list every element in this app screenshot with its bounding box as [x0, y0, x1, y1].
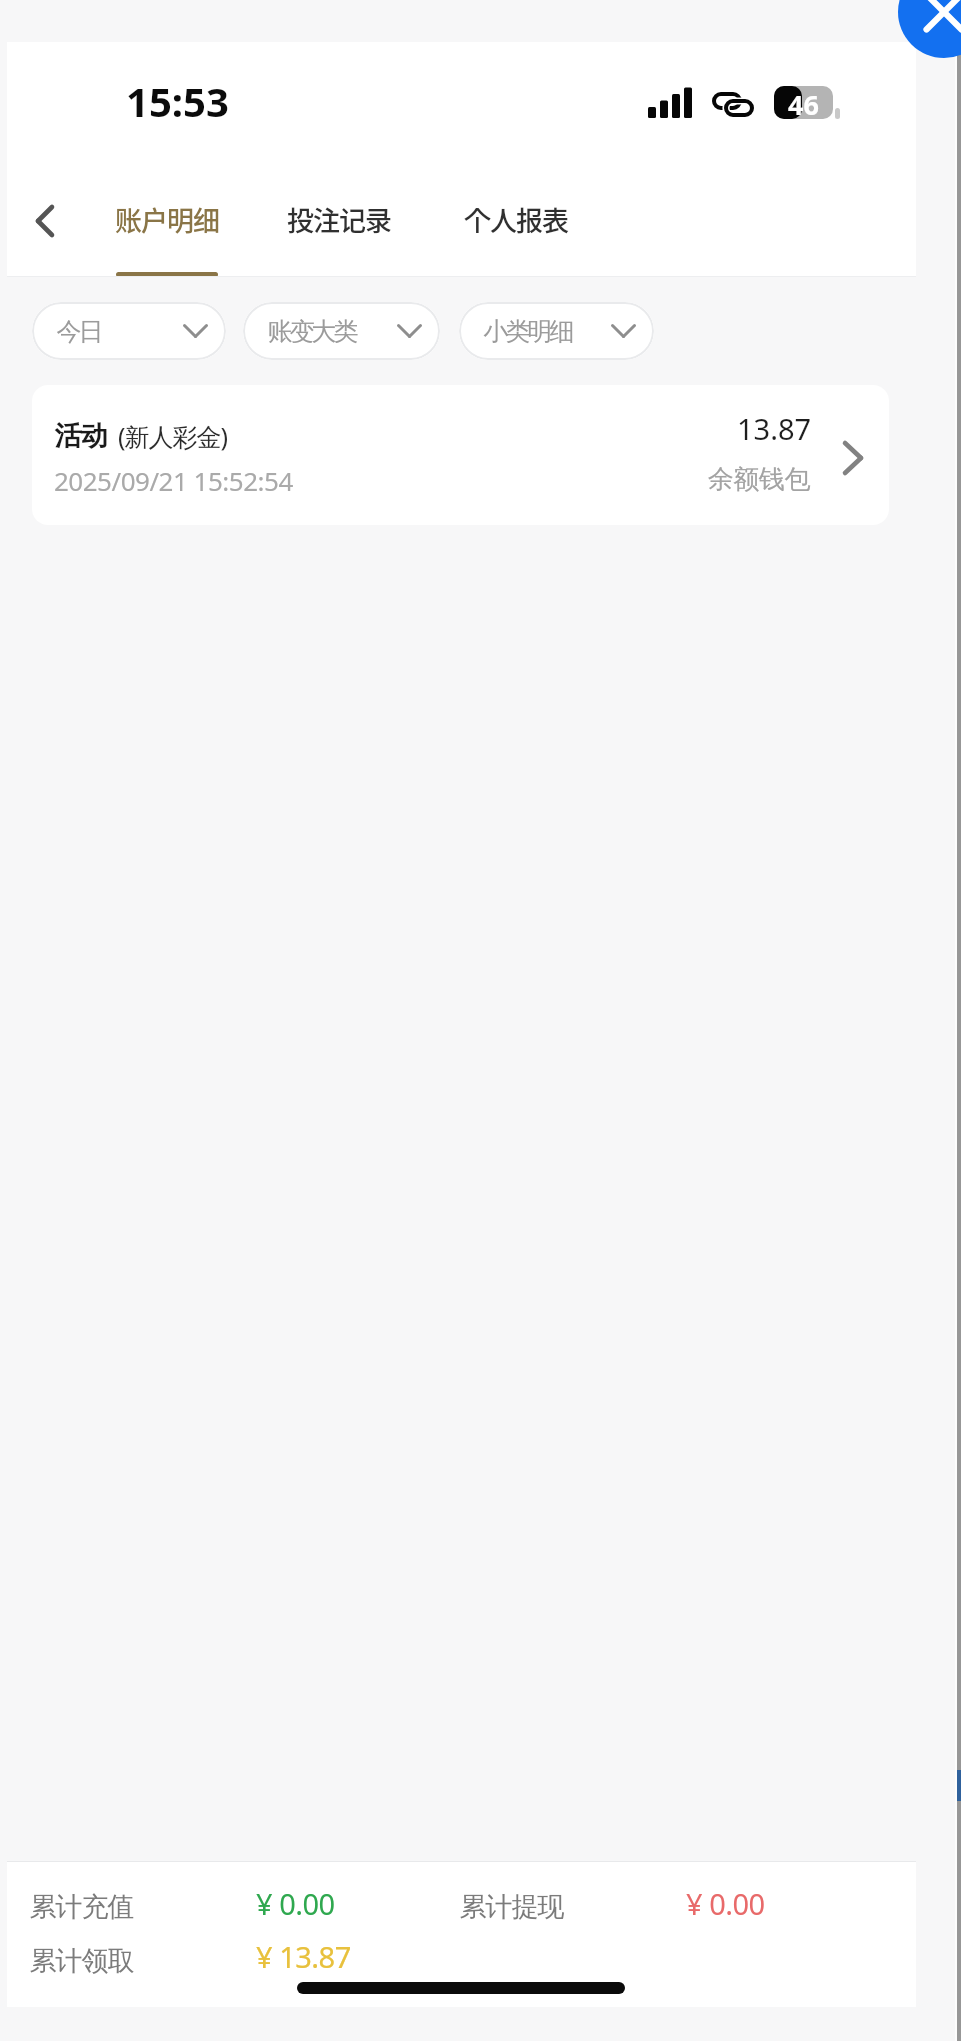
staticText: 账户明细 — [115, 200, 219, 239]
staticText: 累计领取 — [30, 1944, 134, 1978]
button[interactable]: Back — [14, 191, 76, 253]
button[interactable]: 投注记录 — [272, 178, 406, 277]
staticText: 累计充值 — [30, 1890, 134, 1924]
button[interactable]: 个人报表 — [449, 178, 583, 277]
staticText: 46 — [788, 86, 819, 119]
button[interactable]: 小类明细 — [459, 302, 654, 360]
staticText: ¥ 0.00 — [686, 1884, 765, 1923]
staticText: 13.87 — [737, 409, 812, 448]
staticText: ¥ 13.87 — [256, 1937, 351, 1976]
staticText: ¥ 0.00 — [256, 1884, 335, 1923]
staticText: (新人彩金) — [118, 419, 228, 453]
button[interactable]: 账户明细 — [100, 178, 234, 277]
staticText: 活动 — [55, 419, 107, 453]
staticText: 账变大类 — [269, 316, 357, 347]
button[interactable]: 今日 — [32, 302, 226, 360]
button[interactable]: 活动 — [32, 385, 889, 525]
staticText: 余额钱包 — [708, 463, 810, 496]
staticText: 小类明细 — [485, 316, 573, 347]
staticText: 2025/09/21 15:52:54 — [54, 463, 293, 498]
staticText: 15:53 — [126, 74, 229, 128]
staticText: 累计提现 — [460, 1890, 564, 1924]
staticText: 投注记录 — [287, 200, 391, 239]
button[interactable]: 账变大类 — [243, 302, 440, 360]
staticText: 今日 — [58, 316, 102, 347]
button[interactable]: Close — [898, 0, 961, 58]
staticText: 个人报表 — [464, 200, 568, 239]
